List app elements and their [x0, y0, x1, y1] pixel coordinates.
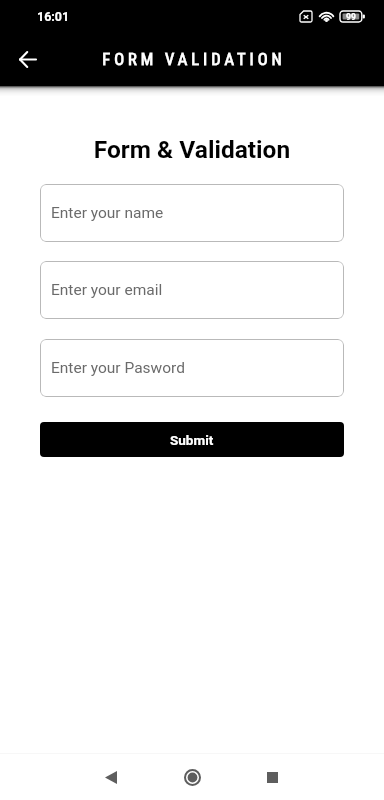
staticText: Enter your email	[51, 281, 163, 299]
button[interactable]: Enter your email	[40, 261, 344, 319]
staticText: 16:01	[37, 9, 70, 24]
staticText: 99	[346, 12, 356, 22]
button[interactable]: Home	[170, 755, 214, 799]
button[interactable]: Back	[5, 37, 50, 82]
button[interactable]: Submit	[40, 422, 344, 457]
button[interactable]: Recents	[250, 755, 294, 799]
staticText: Enter your name	[51, 204, 164, 222]
button[interactable]: Enter your name	[40, 184, 344, 242]
staticText: Submit	[170, 432, 214, 448]
button[interactable]: Back	[89, 755, 133, 799]
staticText: Form & Validation	[0, 135, 384, 164]
staticText: FORM VALIDATION	[102, 50, 286, 69]
button[interactable]: Enter your Pasword	[40, 339, 344, 397]
staticText: Enter your Pasword	[51, 359, 185, 377]
